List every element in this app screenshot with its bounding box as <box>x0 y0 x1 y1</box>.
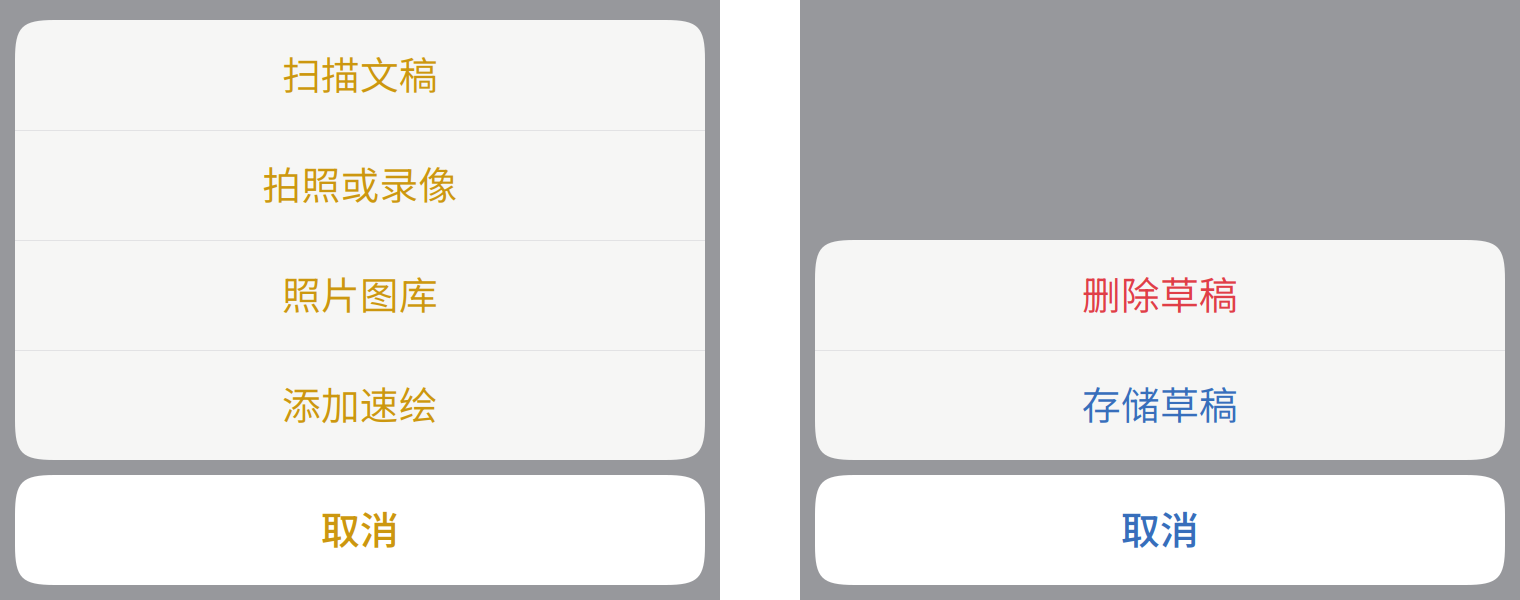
staticText: 删除草稿 <box>1082 265 1238 321</box>
staticText: 添加速绘 <box>282 375 438 431</box>
button[interactable]: 取消 <box>815 475 1505 585</box>
button[interactable]: 扫描文稿 <box>15 20 705 130</box>
button[interactable]: 删除草稿 <box>815 240 1505 350</box>
staticText: 存储草稿 <box>1082 375 1238 431</box>
button[interactable]: 添加速绘 <box>15 350 705 460</box>
staticText: 扫描文稿 <box>282 45 438 101</box>
button[interactable]: 照片图库 <box>15 240 705 350</box>
staticText: 照片图库 <box>282 265 438 321</box>
button[interactable]: 取消 <box>15 475 705 585</box>
button[interactable]: 存储草稿 <box>815 350 1505 460</box>
button[interactable]: 拍照或录像 <box>15 130 705 240</box>
staticText: 取消 <box>321 500 399 556</box>
staticText: 取消 <box>1121 500 1199 556</box>
staticText: 拍照或录像 <box>262 155 457 211</box>
